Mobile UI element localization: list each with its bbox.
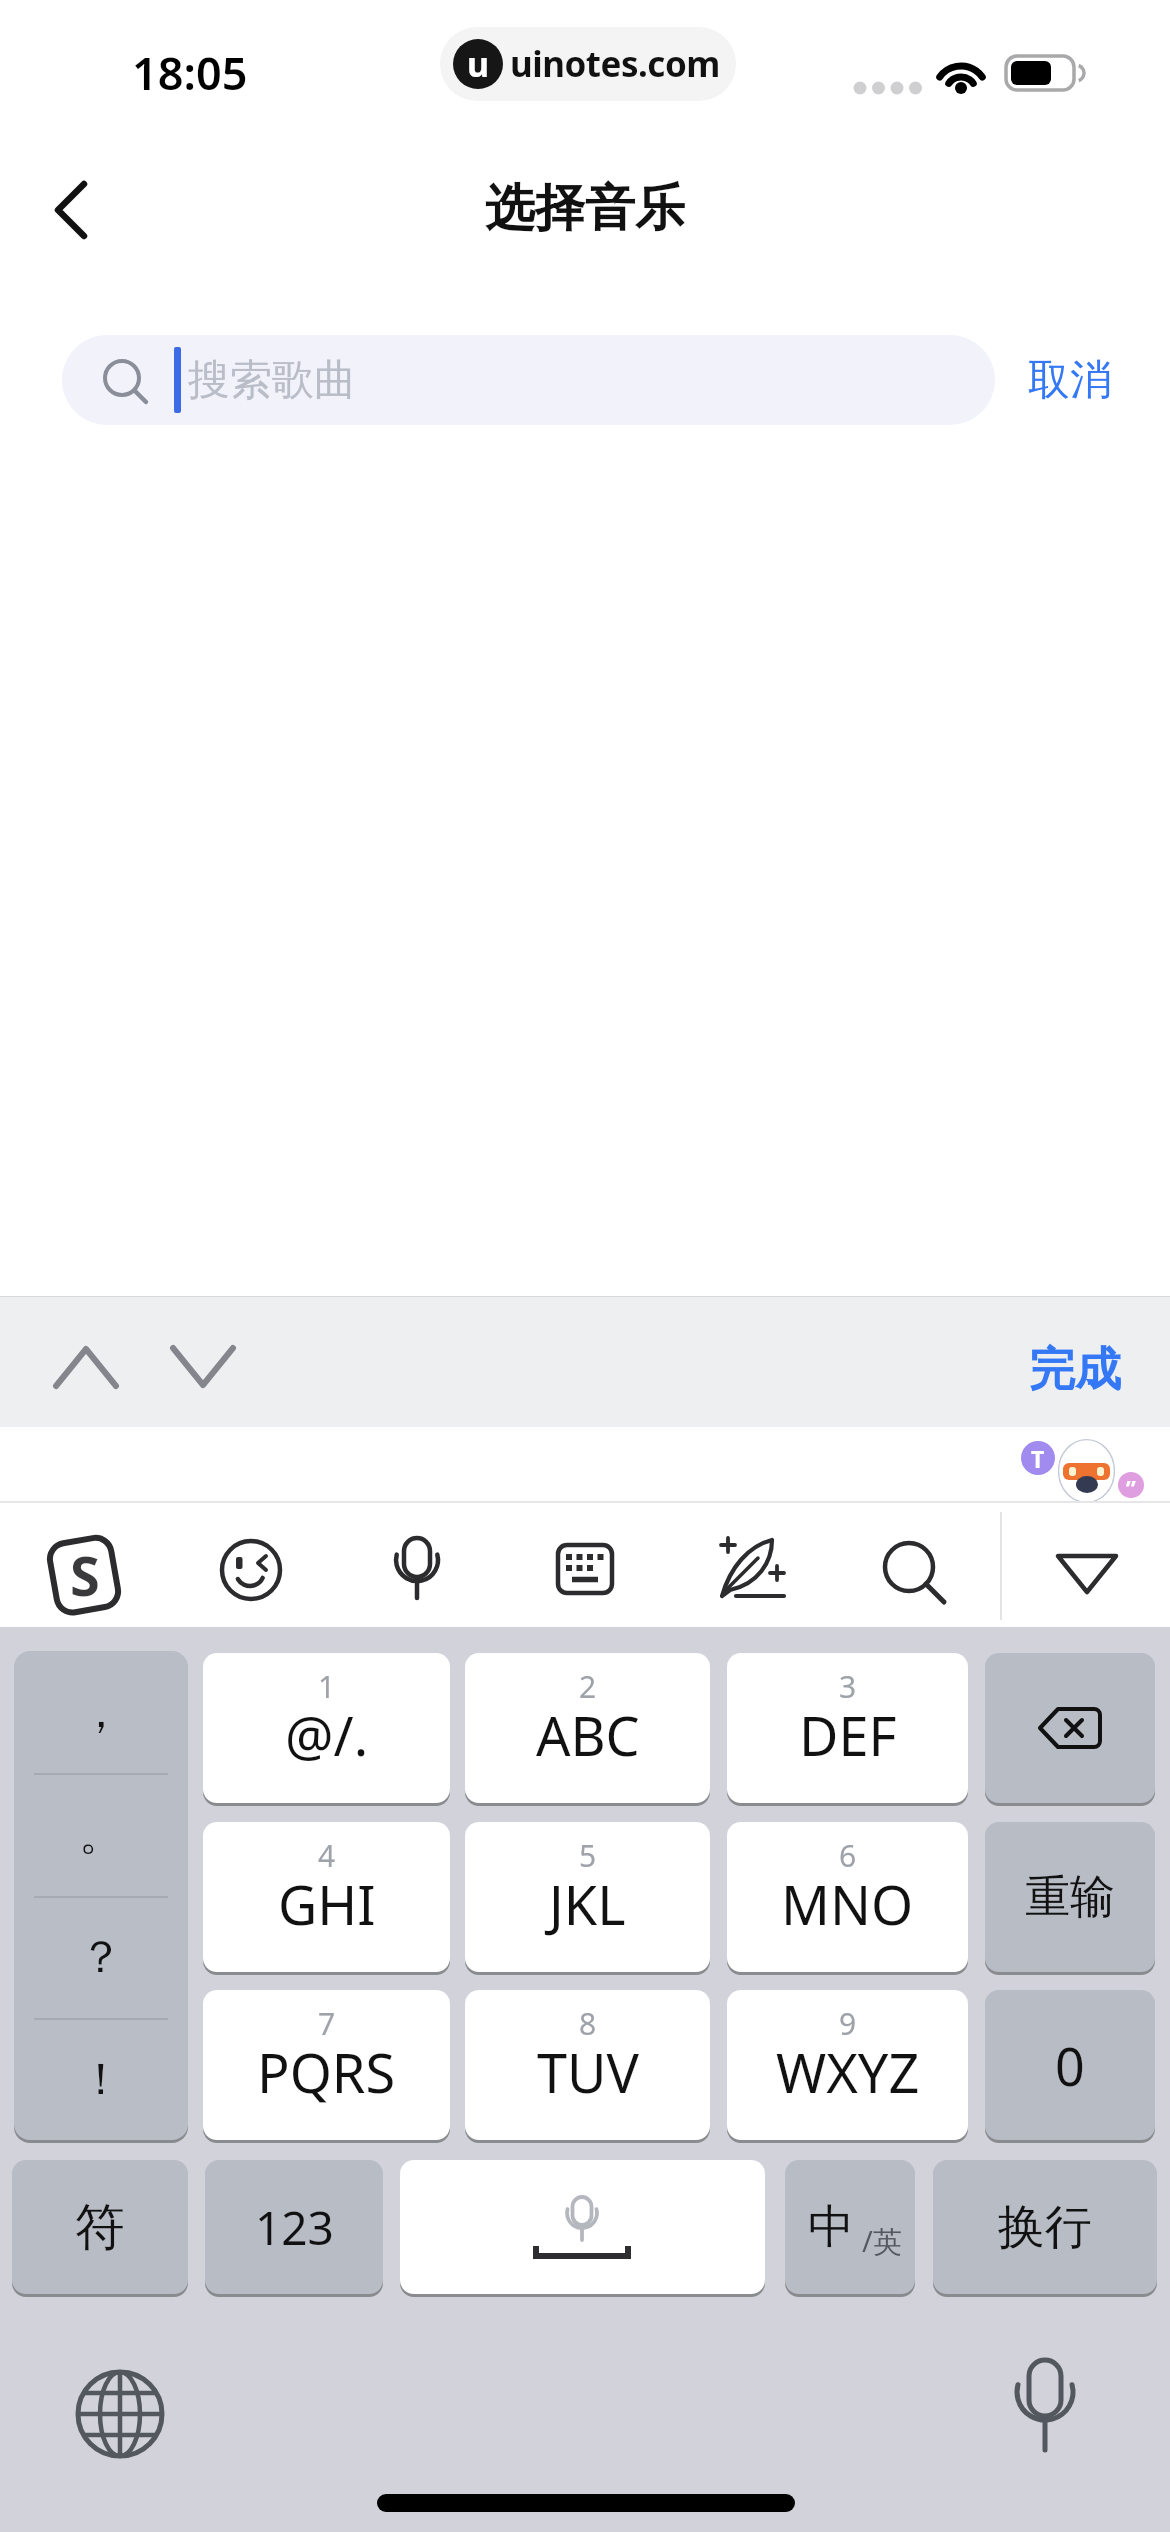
button[interactable]: 搜索歌曲 — [62, 335, 995, 425]
button[interactable] — [985, 1653, 1155, 1803]
staticText: 中 — [808, 2198, 854, 2256]
staticText: JKL — [549, 1867, 626, 1941]
button[interactable]: 取消 — [1015, 335, 1125, 425]
button[interactable]: 3 — [727, 1653, 968, 1803]
staticText: 重输 — [1025, 1869, 1115, 1926]
staticText: WXYZ — [776, 2035, 920, 2109]
staticText: PQRS — [257, 2035, 396, 2109]
staticText: 9 — [839, 2003, 857, 2044]
staticText: @/. — [285, 1698, 369, 1772]
button[interactable] — [40, 172, 112, 248]
staticText: 6 — [839, 1835, 857, 1876]
staticText: 7 — [318, 2003, 336, 2044]
button[interactable] — [1000, 2356, 1090, 2466]
staticText: u — [467, 41, 490, 87]
button[interactable] — [714, 1534, 788, 1604]
staticText: 符 — [75, 2196, 125, 2259]
staticText: ？ — [79, 1930, 123, 1985]
button[interactable]: 1 — [203, 1653, 450, 1803]
staticText: ， — [79, 1685, 123, 1740]
button[interactable]: 换行 — [933, 2160, 1157, 2294]
button[interactable]: 8 — [465, 1990, 710, 2140]
button[interactable] — [400, 2160, 765, 2294]
staticText: 完成 — [1029, 1341, 1121, 1399]
button[interactable] — [43, 1534, 127, 1616]
staticText: ！ — [79, 2052, 123, 2107]
staticText: 1 — [318, 1666, 336, 1707]
button[interactable]: 6 — [727, 1822, 968, 1972]
button[interactable]: 7 — [203, 1990, 450, 2140]
button[interactable]: 0 — [985, 1990, 1155, 2140]
button[interactable] — [72, 2366, 168, 2462]
staticText: 2 — [579, 1666, 597, 1707]
staticText: DEF — [799, 1698, 897, 1772]
button[interactable]: 5 — [465, 1822, 710, 1972]
button[interactable]: 完成 — [1010, 1338, 1140, 1402]
button[interactable] — [391, 1535, 443, 1605]
button[interactable] — [46, 1330, 246, 1400]
button[interactable]: ， — [14, 1651, 188, 2140]
staticText: 。 — [79, 1807, 123, 1862]
button[interactable] — [221, 1540, 281, 1600]
button[interactable]: 中 — [785, 2160, 915, 2294]
staticText: 选择音乐 — [485, 177, 685, 240]
button[interactable]: 重输 — [985, 1822, 1155, 1972]
staticText: ABC — [536, 1698, 640, 1772]
button[interactable]: 4 — [203, 1822, 450, 1972]
button[interactable] — [1048, 1544, 1128, 1604]
staticText: uinotes.com — [510, 40, 720, 88]
staticText: 0 — [1055, 2030, 1085, 2101]
staticText: 换行 — [998, 2198, 1092, 2257]
staticText: MNO — [781, 1867, 914, 1941]
button[interactable]: 2 — [465, 1653, 710, 1803]
button[interactable]: 符 — [12, 2160, 188, 2294]
button[interactable]: 9 — [727, 1990, 968, 2140]
staticText: 18:05 — [132, 42, 248, 102]
staticText: 搜索歌曲 — [188, 354, 356, 407]
staticText: 5 — [579, 1835, 597, 1876]
staticText: TUV — [537, 2035, 639, 2109]
staticText: /英 — [862, 2221, 902, 2261]
button[interactable] — [880, 1538, 950, 1608]
button[interactable] — [556, 1543, 614, 1595]
staticText: 123 — [255, 2196, 334, 2259]
staticText: S — [70, 1538, 100, 1612]
staticText: T — [1031, 1443, 1045, 1474]
staticText: 4 — [318, 1835, 336, 1876]
staticText: ” — [1126, 1472, 1136, 1498]
staticText: 3 — [839, 1666, 857, 1707]
staticText: 取消 — [1028, 354, 1112, 407]
staticText: GHI — [278, 1867, 376, 1941]
staticText: 8 — [579, 2003, 597, 2044]
button[interactable]: 123 — [205, 2160, 383, 2294]
